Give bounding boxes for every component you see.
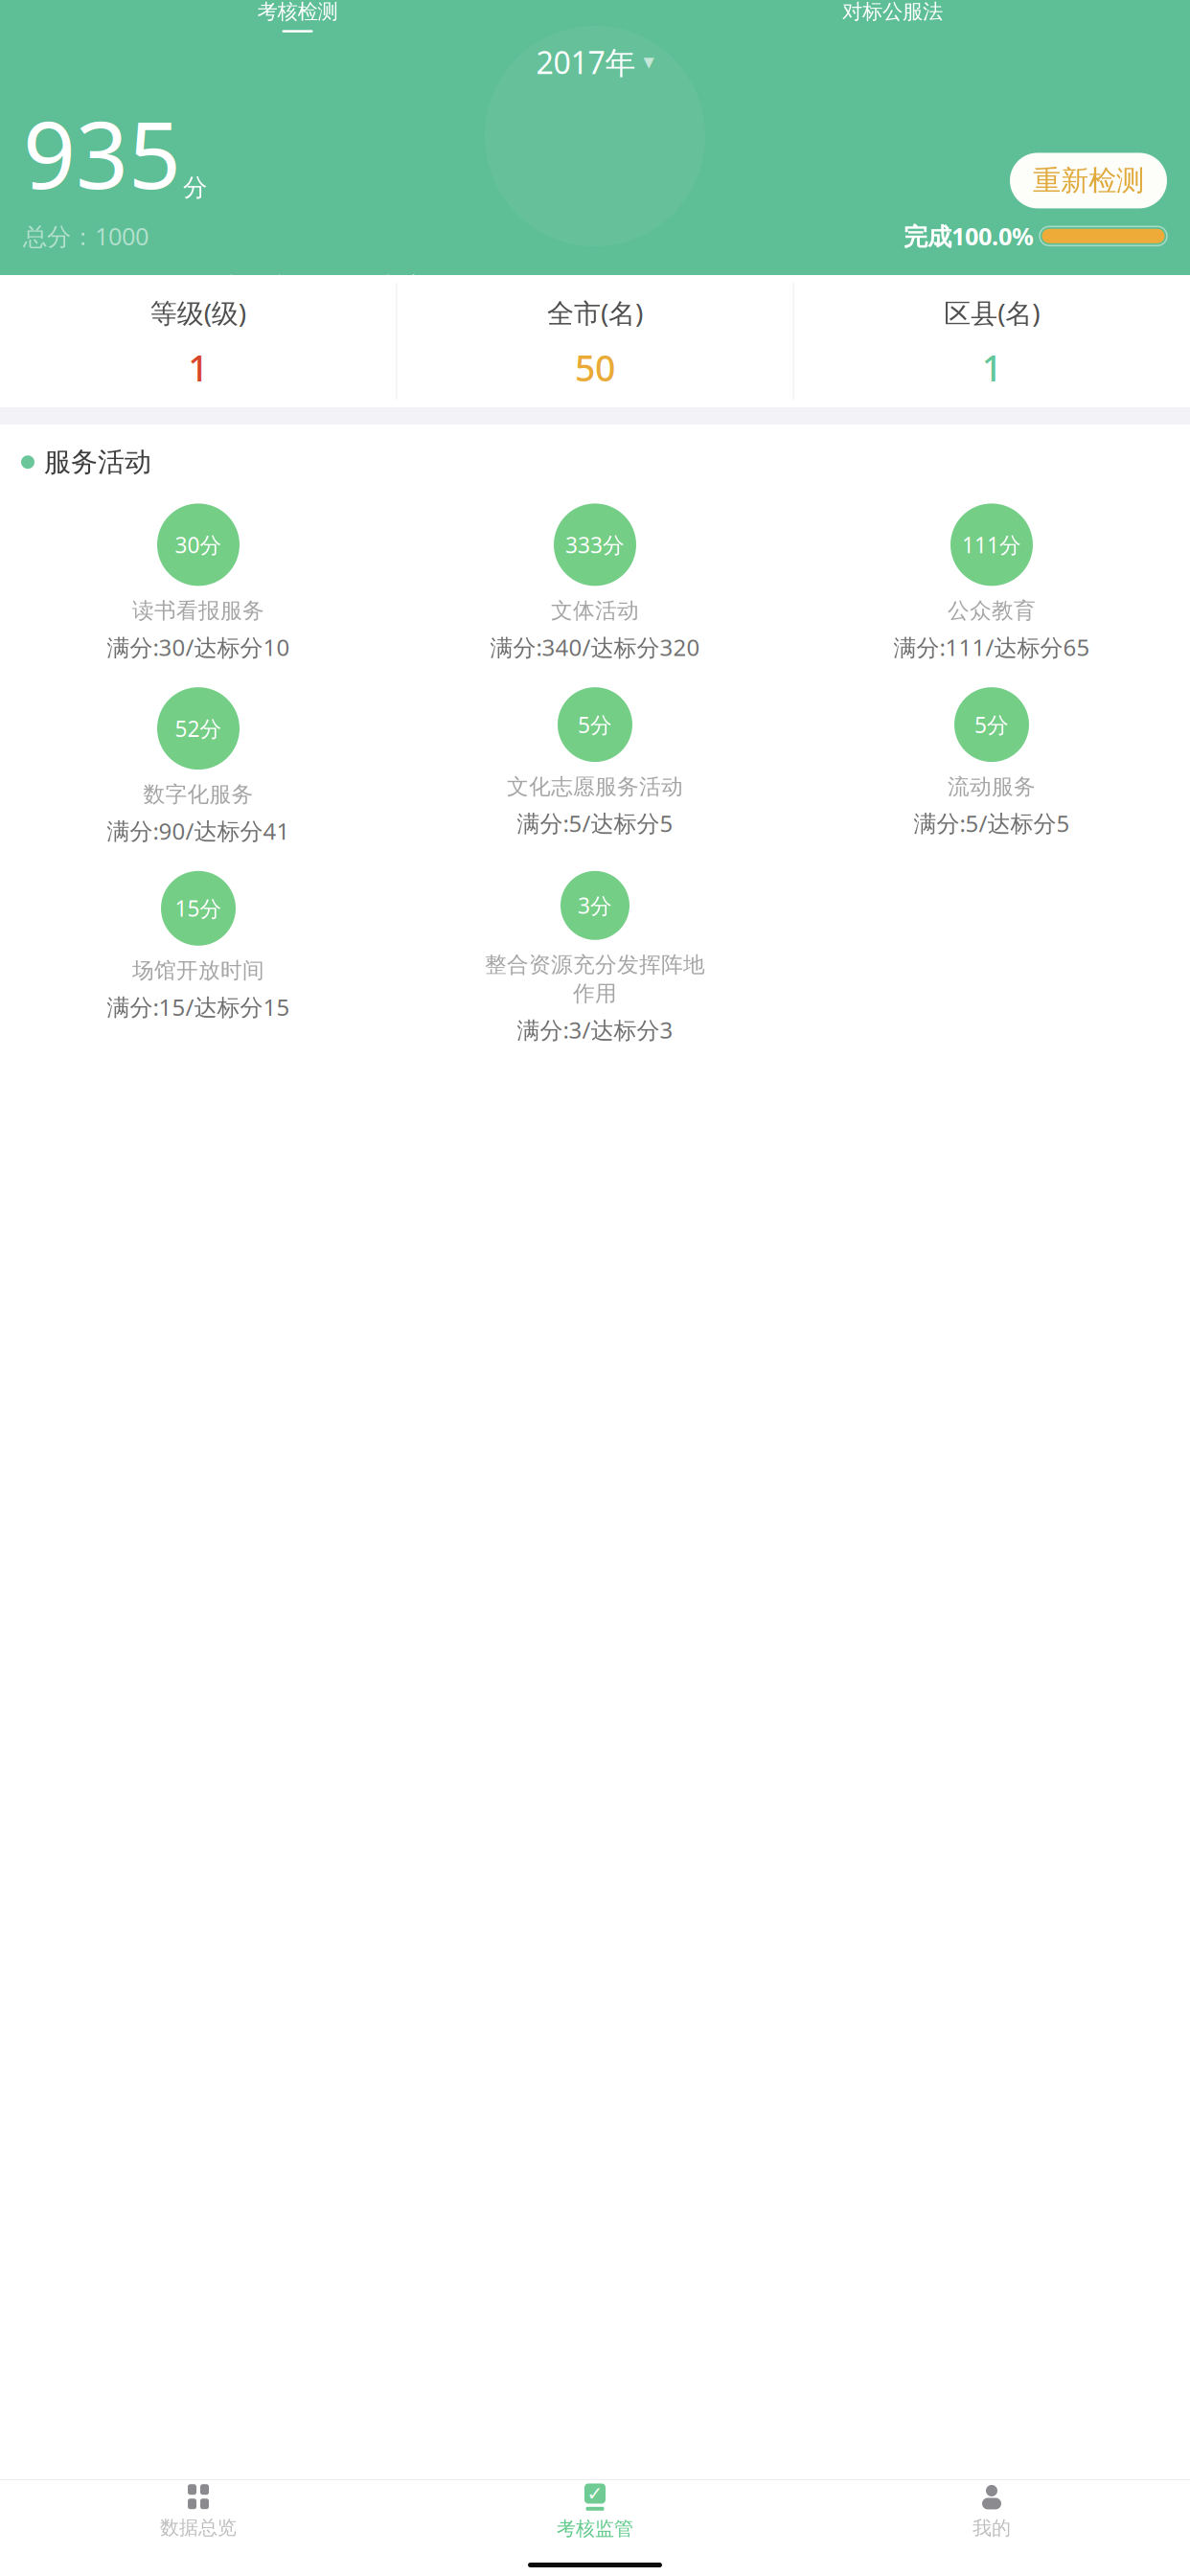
button[interactable]: 5分 [397,687,793,838]
staticText: 综合文化活动中心 [215,271,429,304]
staticText: 重新检测 [1033,163,1144,198]
staticText: 满分:111/达标分65 [893,632,1090,662]
button[interactable]: 考核检测 [0,0,595,32]
staticText: 流动服务 [948,773,1036,800]
staticText: 5分 [578,710,612,739]
staticText: 文体活动 [551,597,639,624]
staticText: 3分 [578,891,612,920]
staticText: 满分:3/达标分3 [517,1014,673,1045]
button[interactable]: 333分 [397,504,793,662]
staticText: 单位： [21,271,102,304]
staticText: 整合资源充分发挥阵地 [485,951,705,978]
staticText: 考核监管 [557,2517,633,2540]
staticText: 满分:5/达标分5 [517,808,673,838]
staticText: 50 [575,344,615,391]
staticText: 完成100.0% [904,220,1034,252]
staticText: 等级(级) [150,295,246,330]
staticText: 52分 [175,714,222,743]
button[interactable]: 5分 [793,687,1190,838]
staticText: 满分:5/达标分5 [914,808,1070,838]
button[interactable]: 单位： [0,252,1190,322]
staticText: 1 [982,344,1002,391]
staticText: 读书看报服务 [132,597,264,624]
staticText: ✓ [587,2483,603,2504]
staticText: 公众教育 [948,597,1036,624]
staticText: 区县(名) [944,295,1040,330]
button[interactable]: 111分 [793,504,1190,662]
staticText: 数字化服务 [143,781,253,808]
button[interactable]: 3分 [397,871,793,1045]
staticText: 对标公服法 [842,0,943,24]
button[interactable]: 我的 [793,2476,1190,2548]
button[interactable]: 30分 [0,504,397,662]
staticText: 全市(名) [547,295,643,330]
staticText: 数据总览 [160,2516,237,2539]
staticText: 总分：1000 [23,220,149,252]
staticText: ▼ [643,54,654,70]
staticText: 场馆开放时间 [132,957,264,984]
staticText: 文化志愿服务活动 [507,773,683,800]
staticText: 分 [183,173,207,203]
staticText: 333分 [565,530,625,559]
button[interactable]: 15分 [0,871,397,1022]
staticText: 935 [23,92,181,214]
staticText: 5分 [974,710,1009,739]
staticText: 满分:30/达标分10 [107,632,290,662]
staticText: 考核检测 [257,0,338,24]
staticText: 满分:90/达标分41 [107,815,290,846]
button[interactable]: 对标公服法 [595,0,1190,32]
staticText: 满分:15/达标分15 [107,992,290,1022]
staticText: 15分 [175,894,222,923]
button[interactable]: ✓ [397,2476,793,2548]
staticText: 1 [188,344,208,391]
button[interactable]: 数据总览 [0,2477,397,2547]
staticText: 作用 [573,980,617,1007]
staticText: 111分 [962,530,1021,559]
staticText: 2017年 [536,42,636,82]
button[interactable]: 52分 [0,687,397,846]
staticText: 满分:340/达标分320 [490,632,700,662]
staticText: 30分 [175,530,222,559]
button[interactable]: 2017年 [523,36,667,88]
button[interactable]: 重新检测 [1010,153,1167,208]
staticText: 服务活动 [44,446,151,479]
staticText: 我的 [973,2516,1011,2540]
